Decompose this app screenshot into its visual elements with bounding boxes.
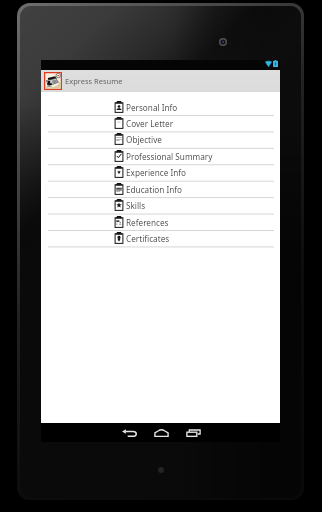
staticText: Cover Letter: [126, 118, 174, 129]
staticText: Express Resume: [65, 76, 123, 86]
button[interactable]: Home: [145, 423, 177, 442]
button[interactable]: Experience Info: [41, 164, 280, 180]
button[interactable]: References: [41, 214, 280, 230]
staticText: Skills: [126, 200, 146, 211]
button[interactable]: Personal Info: [41, 99, 280, 115]
button[interactable]: Back: [113, 423, 145, 442]
staticText: Personal Info: [126, 102, 178, 113]
staticText: References: [126, 217, 169, 228]
button[interactable]: Professional Summary: [41, 148, 280, 164]
staticText: Experience Info: [126, 167, 186, 178]
button[interactable]: Skills: [41, 197, 280, 213]
staticText: Professional Summary: [126, 151, 213, 162]
button[interactable]: Objective: [41, 131, 280, 147]
button[interactable]: Education Info: [41, 181, 280, 197]
button[interactable]: Certificates: [41, 230, 280, 246]
staticText: Objective: [126, 134, 162, 145]
button[interactable]: Recent apps: [177, 423, 209, 442]
staticText: Education Info: [126, 184, 182, 195]
button[interactable]: Cover Letter: [41, 115, 280, 131]
staticText: Certificates: [126, 233, 170, 244]
button[interactable]: Express Resume: [41, 70, 280, 92]
